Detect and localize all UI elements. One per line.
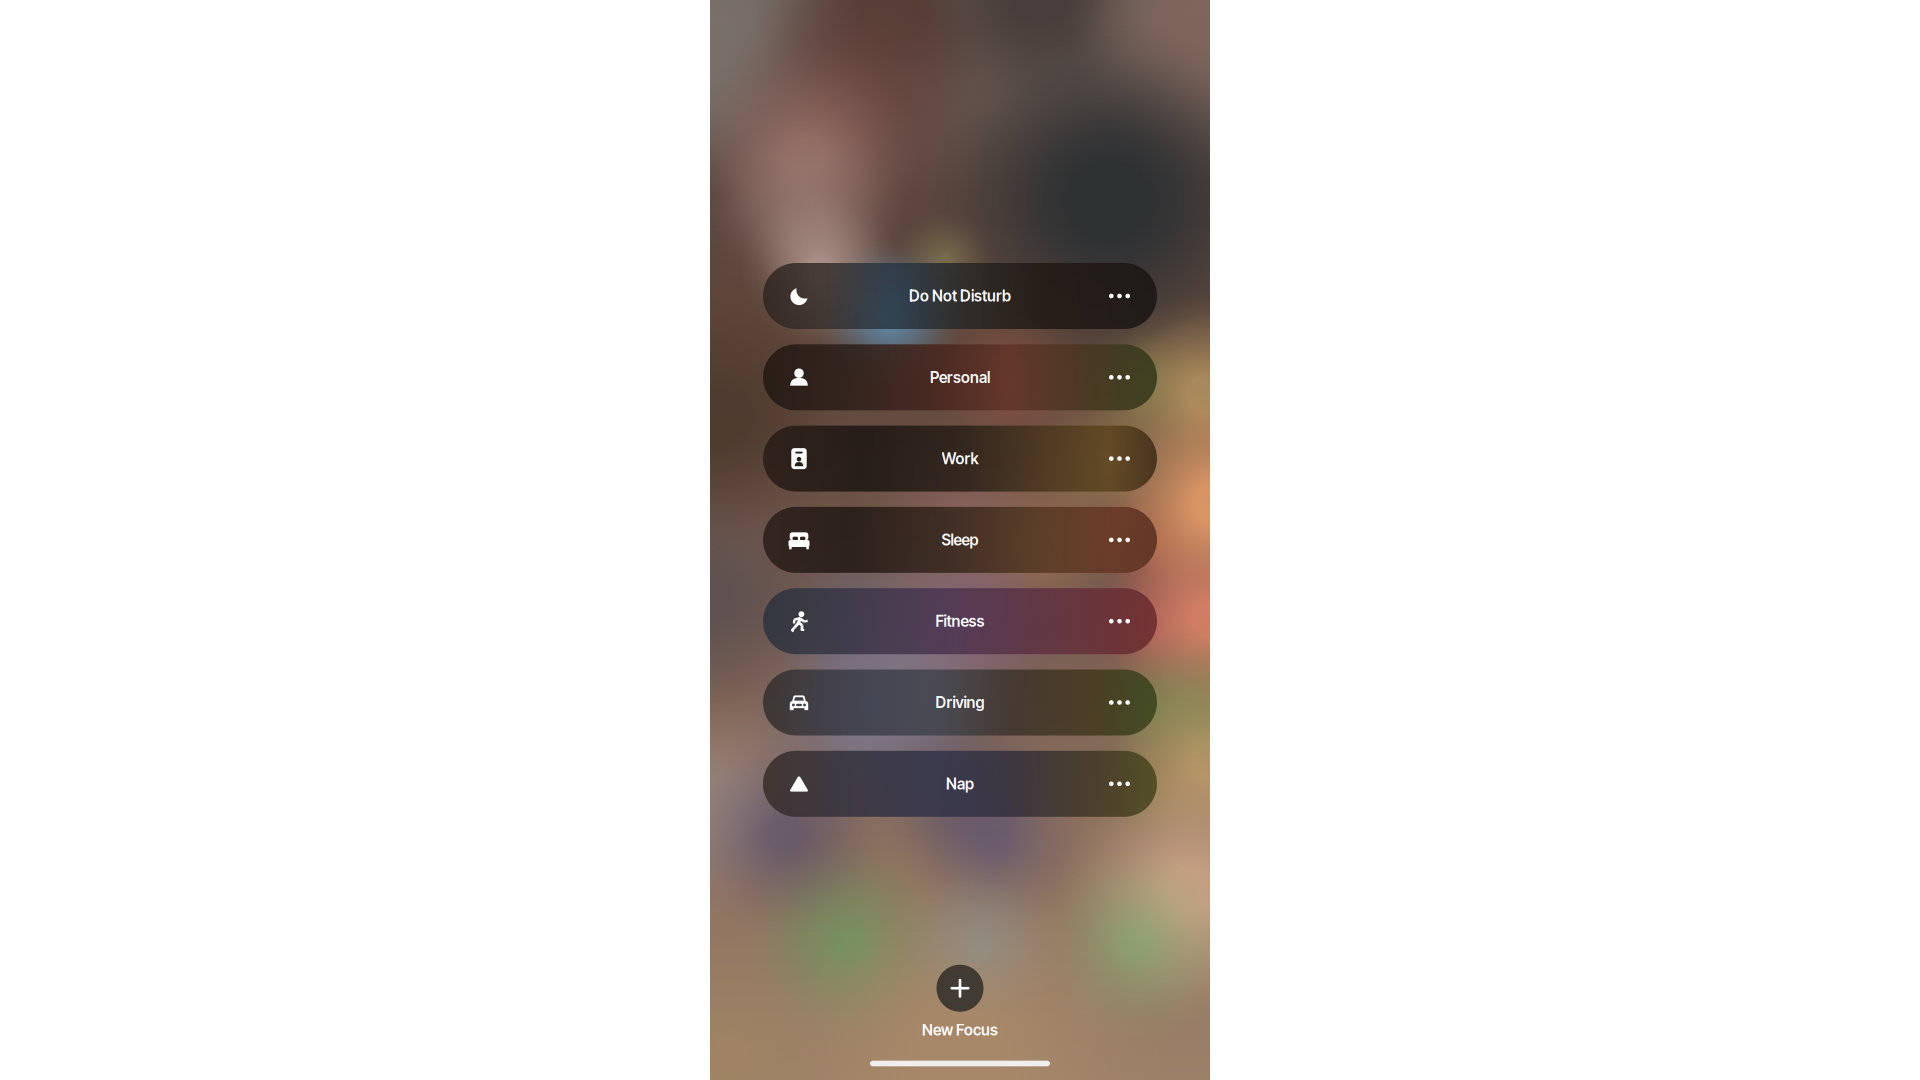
button[interactable]: Driving [763, 669, 1157, 735]
button[interactable]: Personal [763, 344, 1157, 410]
button[interactable]: Work [763, 426, 1157, 492]
staticText: Driving [935, 693, 984, 712]
button[interactable]: Sleep [763, 507, 1157, 573]
staticText: New Focus [922, 1021, 998, 1039]
staticText: Nap [946, 774, 974, 793]
staticText: Work [941, 449, 978, 468]
button[interactable]: Fitness [763, 588, 1157, 654]
staticText: Sleep [941, 531, 978, 549]
staticText: Personal [930, 368, 990, 387]
button[interactable]: Do Not Disturb [763, 263, 1157, 329]
button[interactable] [936, 965, 983, 1012]
button[interactable]: Nap [763, 751, 1157, 817]
staticText: Do Not Disturb [909, 287, 1011, 305]
staticText: Fitness [935, 612, 984, 630]
